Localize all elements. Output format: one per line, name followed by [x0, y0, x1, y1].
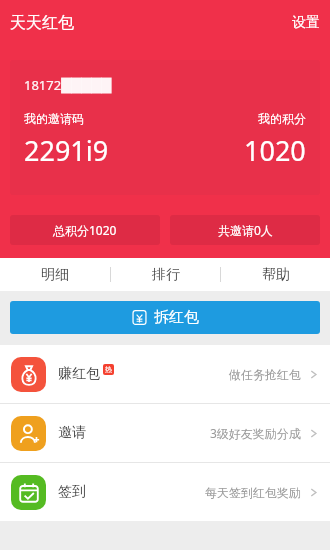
button[interactable]: 拆红包	[10, 301, 320, 334]
staticText: 共邀请0人	[218, 222, 273, 238]
staticText: 设置	[292, 14, 320, 32]
staticText: 1020	[244, 132, 306, 169]
staticText: 热	[105, 365, 112, 374]
button[interactable]: 总积分1020	[10, 215, 160, 245]
staticText: 天天红包	[10, 13, 74, 33]
staticText: 我的邀请码	[24, 111, 84, 126]
staticText: 3级好友奖励分成	[210, 425, 301, 441]
button[interactable]: 排行	[111, 258, 220, 291]
staticText: 签到	[58, 483, 86, 501]
button[interactable]: 签到	[0, 463, 330, 521]
staticText: 总积分1020	[53, 222, 117, 238]
staticText: 排行	[152, 266, 180, 284]
button[interactable]: 邀请	[0, 404, 330, 462]
staticText: 我的积分	[258, 111, 306, 126]
button[interactable]: 帮助	[221, 258, 330, 291]
staticText: 拆红包	[154, 308, 199, 327]
staticText: 18172█████	[24, 76, 112, 94]
staticText: 赚红包	[58, 365, 100, 383]
button[interactable]: 设置	[282, 6, 330, 40]
staticText: 每天签到红包奖励	[205, 485, 301, 500]
staticText: 做任务抢红包	[229, 367, 301, 382]
staticText: 帮助	[262, 266, 290, 284]
button[interactable]: 明细	[0, 258, 110, 291]
staticText: 邀请	[58, 424, 86, 442]
staticText: 2291i9	[24, 132, 109, 169]
button[interactable]: 共邀请0人	[170, 215, 320, 245]
button[interactable]: 赚红包	[0, 345, 330, 403]
staticText: 明细	[41, 266, 69, 284]
